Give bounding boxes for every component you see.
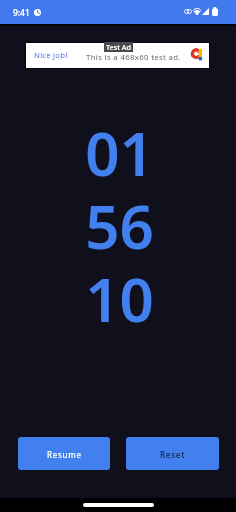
staticText: Reset xyxy=(160,449,185,460)
staticText: Test Ad xyxy=(106,42,131,52)
staticText: 56 xyxy=(85,185,154,258)
button[interactable]: Reset xyxy=(126,437,219,470)
staticText: 9:41 xyxy=(13,7,30,18)
other: Mobile signal xyxy=(202,8,209,15)
button[interactable]: Advertisement banner xyxy=(25,42,210,69)
staticText: 01 xyxy=(85,112,154,185)
staticText: 10 xyxy=(85,258,154,331)
staticText: This is a 468x60 test ad. xyxy=(86,52,181,63)
staticText: Nice job! xyxy=(34,50,68,61)
staticText: Resume xyxy=(47,449,82,460)
other: Alarm set xyxy=(34,9,41,16)
other: Battery xyxy=(212,7,218,16)
button[interactable]: Resume xyxy=(18,437,110,470)
other: Wi-Fi xyxy=(193,8,201,15)
